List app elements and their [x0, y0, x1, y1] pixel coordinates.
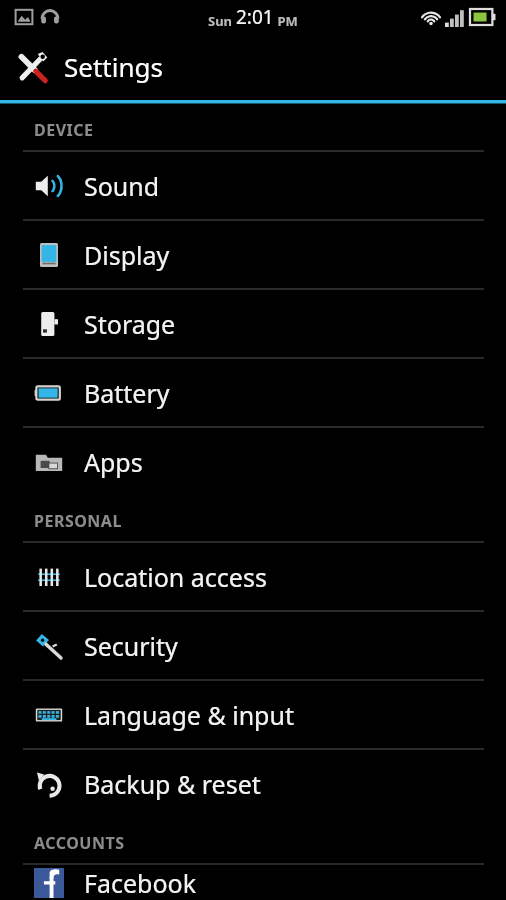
staticText: Facebook [84, 866, 197, 900]
staticText: PERSONAL [34, 510, 122, 532]
button[interactable]: Facebook [0, 865, 506, 900]
staticText: Apps [84, 445, 143, 479]
button[interactable]: Backup & reset [0, 750, 506, 817]
staticText: Language & input [84, 698, 294, 732]
staticText: ACCOUNTS [34, 832, 125, 854]
button[interactable]: Security [0, 612, 506, 679]
staticText: DEVICE [34, 119, 94, 141]
button[interactable]: Location access [0, 543, 506, 610]
button[interactable]: Battery [0, 359, 506, 426]
staticText: Settings [64, 49, 163, 84]
staticText: Backup & reset [84, 767, 261, 801]
staticText: Location access [84, 560, 267, 594]
button[interactable]: Language & input [0, 681, 506, 748]
button[interactable]: Sound [0, 152, 506, 219]
staticText: Sound [84, 169, 160, 203]
button[interactable]: Apps [0, 428, 506, 495]
staticText: Sun [208, 12, 236, 30]
button[interactable]: Display [0, 221, 506, 288]
staticText: 2:01 [236, 4, 274, 30]
staticText: PM [274, 12, 298, 30]
staticText: Battery [84, 376, 170, 410]
button[interactable]: Storage [0, 290, 506, 357]
staticText: Storage [84, 307, 176, 341]
staticText: Display [84, 238, 170, 272]
staticText: Security [84, 629, 178, 663]
